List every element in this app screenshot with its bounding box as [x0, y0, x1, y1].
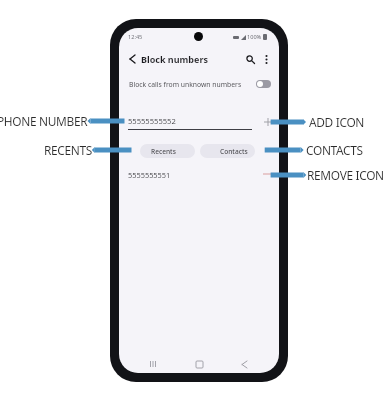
staticText: 5555555551	[128, 170, 171, 180]
staticText: 100%	[247, 33, 262, 41]
staticText: Block calls from unknown numbers	[129, 80, 242, 89]
button[interactable]: Block calls from unknown numbers	[119, 72, 279, 95]
button[interactable]: 5555555551	[119, 163, 279, 183]
staticText: CONTACTS	[306, 142, 363, 158]
staticText: Recents	[151, 147, 176, 156]
button[interactable]: Recent apps	[145, 356, 161, 372]
staticText: 12:45	[128, 33, 143, 41]
staticText: REMOVE ICON	[307, 167, 384, 183]
staticText: 55555555552	[128, 116, 176, 126]
button[interactable]: Search	[242, 51, 258, 67]
staticText: ADD ICON	[309, 114, 365, 130]
button[interactable]: Home	[191, 356, 207, 372]
button[interactable]: Recents	[140, 144, 195, 158]
staticText: PHONE NUMBER	[0, 113, 88, 129]
button[interactable]: Contacts	[200, 144, 255, 158]
button[interactable]: Remove number	[261, 167, 274, 180]
button[interactable]: More options	[258, 51, 274, 67]
button[interactable]: Back	[236, 356, 252, 372]
button[interactable]: Add number	[261, 115, 274, 128]
staticText: Contacts	[220, 147, 248, 156]
staticText: Block numbers	[141, 53, 208, 65]
staticText: RECENTS	[44, 142, 92, 158]
button[interactable]: Navigate up	[124, 51, 140, 67]
